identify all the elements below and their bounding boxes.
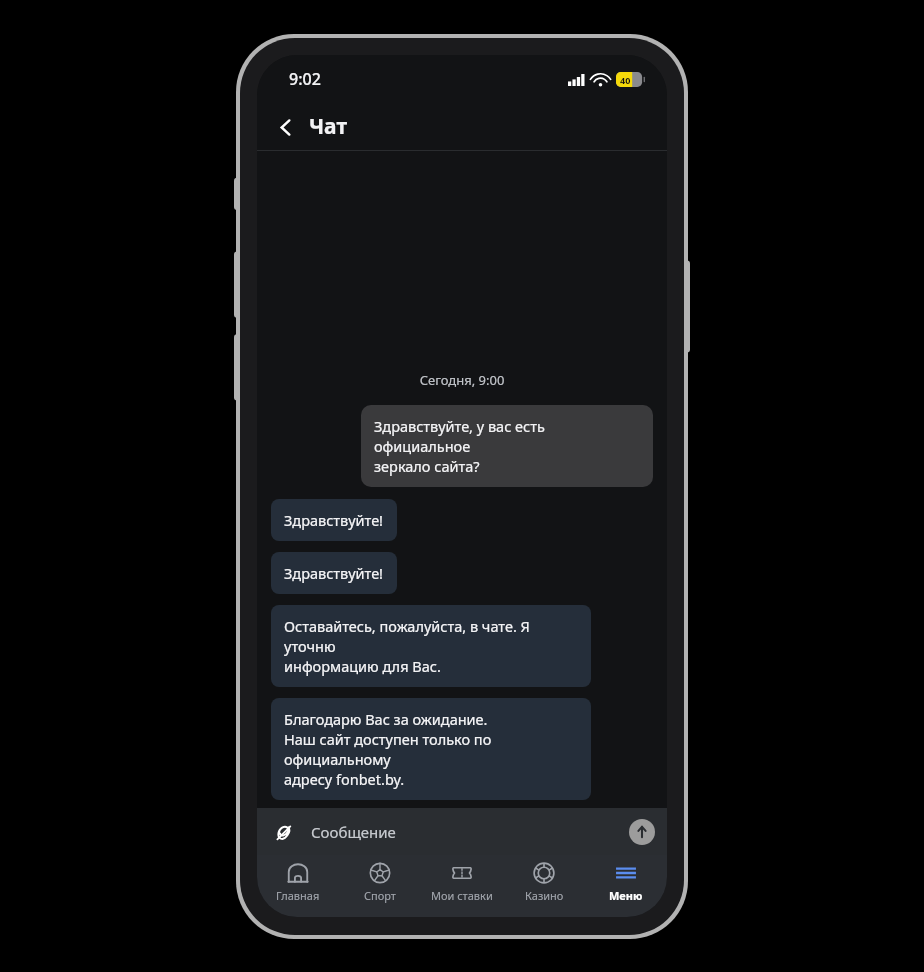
button[interactable]: Send — [629, 819, 655, 845]
staticText: Здравствуйте, у вас есть официальное зер… — [374, 416, 640, 476]
button[interactable]: Attach file — [265, 814, 301, 850]
button[interactable]: Здравствуйте, у вас есть официальное зер… — [361, 405, 653, 487]
button[interactable]: Здравствуйте! — [271, 499, 397, 541]
staticText: Меню — [609, 888, 643, 903]
button[interactable]: Back — [265, 107, 305, 147]
button[interactable]: Здравствуйте! — [271, 552, 397, 594]
staticText: 40 — [620, 74, 631, 86]
staticText: Сегодня, 9:00 — [271, 371, 653, 389]
staticText: Казино — [525, 888, 564, 903]
button[interactable]: Меню — [585, 855, 667, 917]
staticText: Главная — [276, 888, 320, 903]
button[interactable]: Мои ставки — [421, 855, 503, 917]
staticText: Здравствуйте! — [284, 510, 384, 530]
button[interactable]: Казино — [503, 855, 585, 917]
staticText: Оставайтесь, пожалуйста, в чате. Я уточн… — [284, 616, 578, 676]
staticText: Мои ставки — [431, 888, 493, 903]
button[interactable]: Оставайтесь, пожалуйста, в чате. Я уточн… — [271, 605, 591, 687]
staticText: Спорт — [364, 888, 396, 903]
button[interactable]: Благодарю Вас за ожидание. Наш сайт дост… — [271, 698, 591, 800]
button[interactable]: Спорт — [339, 855, 421, 917]
staticText: 9:02 — [289, 68, 321, 90]
staticText: Здравствуйте! — [284, 563, 384, 583]
staticText: Сообщение — [311, 822, 396, 842]
button[interactable]: Главная — [257, 855, 339, 917]
staticText: Чат — [309, 112, 348, 141]
staticText: Благодарю Вас за ожидание. Наш сайт дост… — [284, 709, 578, 789]
